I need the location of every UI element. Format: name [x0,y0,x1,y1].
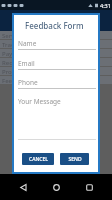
staticText: Feedback Form [25,20,84,31]
button[interactable]: Back [13,177,33,197]
staticText: Your Message [18,97,61,106]
staticText: Phone [18,78,38,87]
staticText: CANCEL [29,156,48,163]
staticText: Profile [2,68,21,76]
staticText: Service Request [2,32,48,40]
button[interactable]: Recent apps [79,177,99,197]
staticText: Pay Bill [2,50,23,58]
staticText: Feedback [2,77,30,85]
staticText: Name [18,39,37,48]
staticText: Track Order [2,41,36,49]
staticText: Recharge [2,59,30,67]
button[interactable]: CANCEL [22,153,54,165]
staticText: Email [18,59,35,68]
button[interactable]: Home [46,177,66,197]
staticText: 4:31 [100,2,111,9]
staticText: SEND [68,156,82,163]
button[interactable]: SEND [60,153,89,165]
